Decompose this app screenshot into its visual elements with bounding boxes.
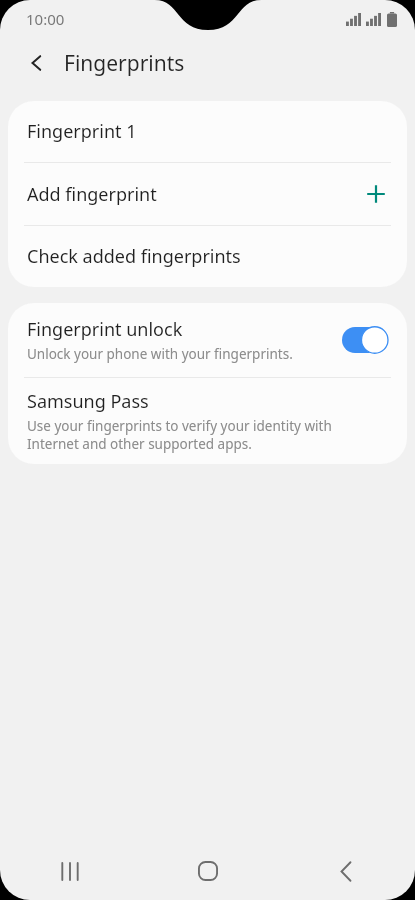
staticText: Use your fingerprints to verify your ide… xyxy=(27,417,347,453)
button[interactable]: Fingerprint unlock xyxy=(8,303,407,377)
staticText: Fingerprints xyxy=(64,49,185,78)
button[interactable]: Fingerprint unlock toggle xyxy=(339,323,391,357)
button[interactable]: Recent apps xyxy=(0,842,139,900)
button[interactable]: Fingerprint 1 xyxy=(8,101,407,162)
staticText: Add fingerprint xyxy=(27,182,157,207)
button[interactable]: Check added fingerprints xyxy=(8,226,407,287)
staticText: 10:00 xyxy=(26,9,65,29)
button[interactable]: Back xyxy=(18,44,56,82)
staticText: Samsung Pass xyxy=(27,389,149,414)
button[interactable]: Add fingerprint xyxy=(8,163,407,225)
staticText: Unlock your phone with your fingerprints… xyxy=(27,345,293,363)
button[interactable]: Samsung Pass xyxy=(8,378,407,464)
staticText: Fingerprint unlock xyxy=(27,317,183,342)
staticText: Check added fingerprints xyxy=(27,244,241,269)
staticText: Fingerprint 1 xyxy=(27,119,137,144)
button[interactable]: Home xyxy=(139,842,277,900)
button[interactable]: Back xyxy=(277,842,415,900)
